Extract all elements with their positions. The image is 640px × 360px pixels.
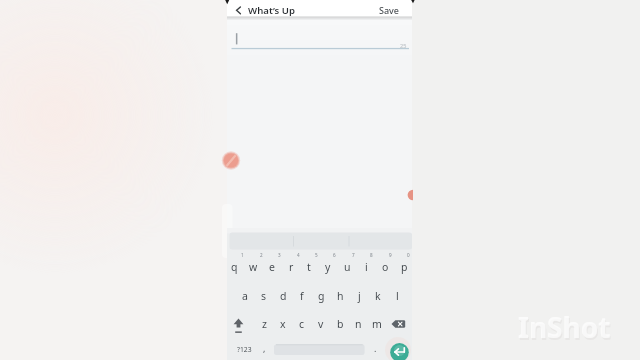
button[interactable]: b [331, 316, 349, 332]
staticText: m [372, 317, 382, 331]
button[interactable]: p [395, 259, 413, 275]
button[interactable]: . [369, 340, 381, 356]
button[interactable]: s [255, 288, 273, 304]
staticText: a [242, 289, 248, 303]
staticText: r [289, 260, 294, 274]
button[interactable]: h [331, 288, 349, 304]
button[interactable]: x [274, 316, 292, 332]
staticText: d [280, 289, 287, 303]
button[interactable]: c [293, 316, 311, 332]
staticText: InShot [519, 310, 612, 348]
button[interactable]: f [293, 288, 311, 304]
staticText: 4 [297, 252, 300, 258]
staticText: 7 [352, 252, 355, 258]
button[interactable]: j [350, 288, 368, 304]
staticText: What’s Up [248, 4, 295, 17]
staticText: i [365, 260, 368, 274]
button[interactable]: , [258, 340, 270, 356]
staticText: Save [379, 4, 400, 16]
staticText: k [375, 289, 381, 303]
staticText: 9 [389, 252, 392, 258]
staticText: 2 [260, 252, 263, 258]
staticText: u [344, 260, 351, 274]
staticText: n [355, 317, 362, 331]
staticText: x [280, 317, 286, 331]
staticText: f [300, 289, 304, 303]
button[interactable]: g [312, 288, 330, 304]
button[interactable]: u [338, 259, 356, 275]
staticText: 25 [400, 42, 407, 49]
staticText: , [263, 342, 266, 354]
button[interactable]: d [274, 288, 292, 304]
button[interactable]: e [263, 259, 281, 275]
button[interactable] [231, 2, 245, 16]
staticText: h [337, 289, 344, 303]
button[interactable]: i [357, 259, 375, 275]
staticText: y [325, 260, 331, 274]
staticText: 1 [241, 252, 244, 258]
button[interactable]: w [244, 259, 262, 275]
staticText: 5 [315, 252, 318, 258]
button[interactable]: Save [378, 2, 400, 18]
staticText: s [261, 289, 267, 303]
staticText: . [374, 342, 377, 354]
button[interactable]: n [349, 316, 367, 332]
staticText: v [318, 317, 324, 331]
staticText: c [299, 317, 305, 331]
staticText: 3 [278, 252, 281, 258]
staticText: w [249, 260, 258, 274]
staticText: o [382, 260, 389, 274]
staticText: z [262, 317, 267, 331]
staticText: g [318, 289, 325, 303]
button[interactable]: l [388, 288, 406, 304]
staticText: 0 [407, 252, 410, 258]
button[interactable]: r [282, 259, 300, 275]
staticText: b [337, 317, 344, 331]
button[interactable]: t [300, 259, 318, 275]
button[interactable] [390, 343, 409, 360]
staticText: q [231, 260, 238, 274]
button[interactable]: m [368, 316, 386, 332]
button[interactable]: ?123 [231, 341, 257, 357]
staticText: j [358, 289, 361, 303]
staticText: ?123 [237, 345, 252, 354]
staticText: l [396, 289, 399, 303]
staticText: 8 [370, 252, 373, 258]
button[interactable]: q [225, 259, 243, 275]
staticText: p [401, 260, 408, 274]
button[interactable] [274, 343, 366, 354]
button[interactable]: y [319, 259, 337, 275]
button[interactable]: o [376, 259, 394, 275]
staticText: e [269, 260, 275, 274]
button[interactable]: a [236, 288, 254, 304]
staticText: t [307, 260, 311, 274]
button[interactable]: v [312, 316, 330, 332]
staticText: 6 [333, 252, 336, 258]
button[interactable]: k [369, 288, 387, 304]
button[interactable]: z [255, 316, 273, 332]
staticText: InShot [518, 308, 611, 346]
